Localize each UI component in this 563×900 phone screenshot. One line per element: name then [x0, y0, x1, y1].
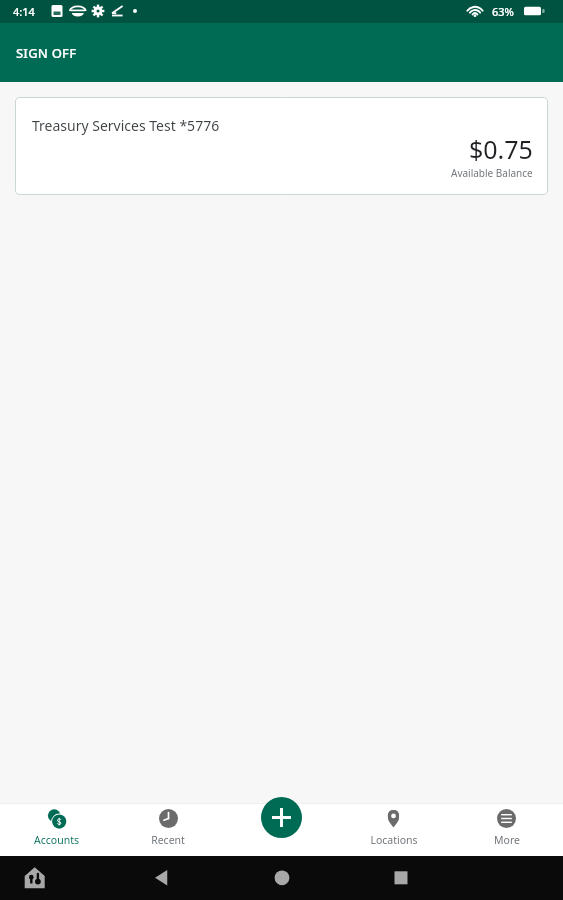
staticText: Recent — [151, 833, 185, 847]
staticText: 4:14 — [13, 4, 35, 19]
staticText: $0.75 — [469, 132, 533, 166]
staticText: Locations — [370, 833, 418, 847]
other: System navigation — [0, 856, 563, 900]
staticText: Available Balance — [451, 166, 533, 180]
staticText: More — [494, 833, 520, 847]
button[interactable]: More — [450, 803, 563, 856]
button[interactable]: SIGN OFF — [8, 38, 85, 68]
button[interactable]: Add — [261, 797, 302, 838]
staticText: Accounts — [34, 833, 79, 847]
button[interactable]: Recent — [112, 803, 224, 856]
button[interactable]: Locations — [337, 803, 450, 856]
button[interactable]: Treasury Services Test *5776 — [15, 97, 548, 195]
button[interactable]: Accounts — [0, 803, 112, 856]
staticText: 63% — [492, 4, 514, 19]
staticText: SIGN OFF — [16, 44, 77, 62]
staticText: Treasury Services Test *5776 — [32, 116, 220, 135]
